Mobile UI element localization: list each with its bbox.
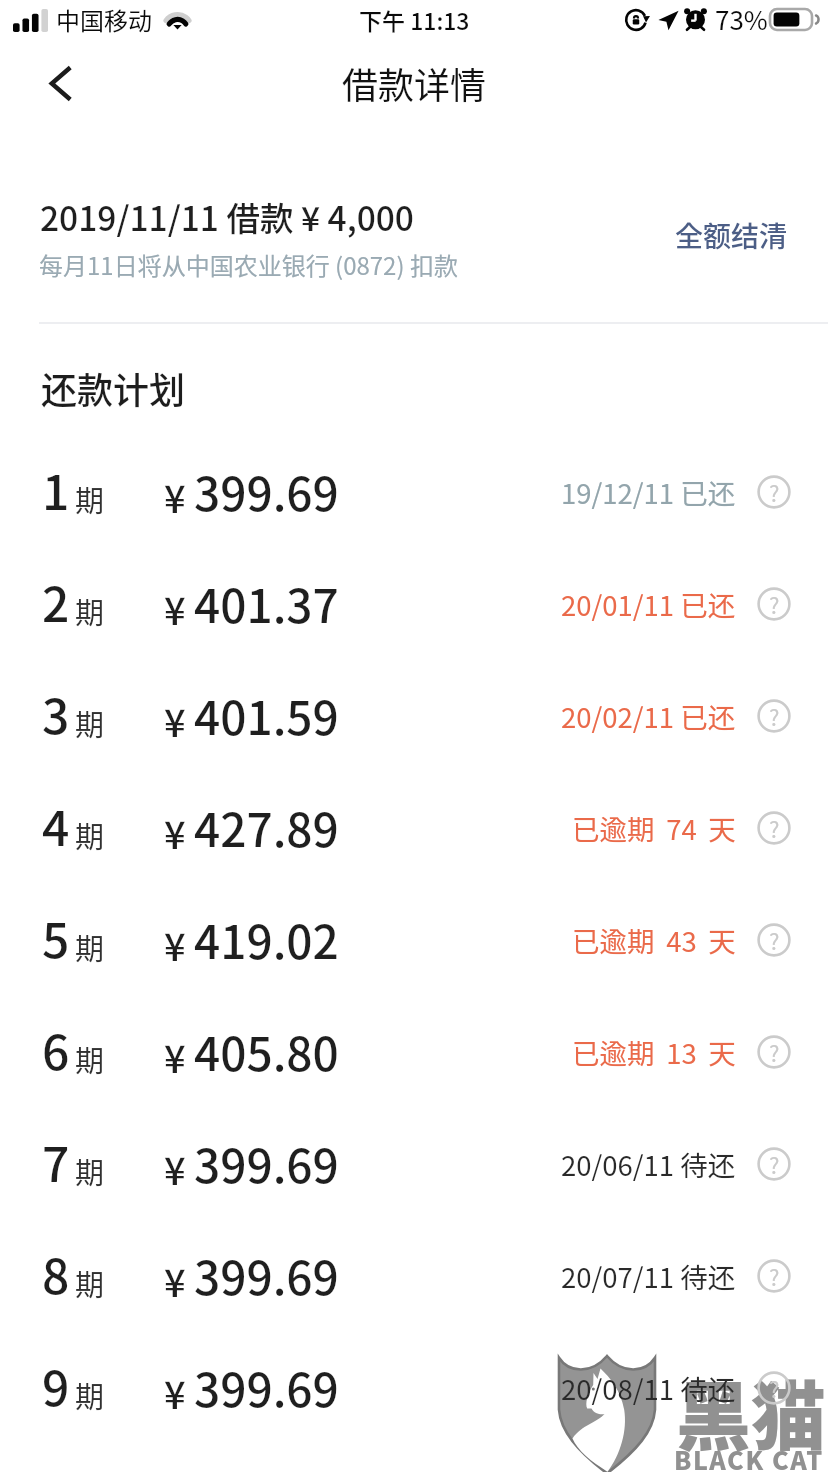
staticText: 下午 11:13 [359,3,470,36]
button[interactable]: Help [757,475,791,509]
button[interactable]: 9 [0,1330,828,1442]
staticText: ? [769,476,780,508]
staticText: ¥ [164,1029,186,1084]
staticText: 全额结清 [675,215,788,256]
button[interactable]: Help [757,587,791,621]
staticText: 期 [75,1262,105,1304]
button[interactable]: 3 [0,658,828,770]
staticText: 5 [42,902,70,972]
staticText: 2 [42,566,70,636]
button[interactable]: Help [757,923,791,957]
button[interactable]: Help [757,1371,791,1405]
staticText: ? [769,700,780,732]
staticText: ? [769,812,780,844]
staticText: 20/08/11 待还 [561,1368,736,1408]
staticText: 2019/11/11 借款 ¥ 4,000 [40,192,414,241]
staticText: 还款计划 [41,362,186,414]
staticText: 3 [42,678,70,748]
staticText: 4 [42,790,70,860]
staticText: 399.69 [194,1242,339,1309]
staticText: BLACK CAT [674,1441,824,1472]
staticText: 黑猫 [676,1357,827,1466]
staticText: ¥ [164,581,186,636]
staticText: 7 [42,1126,70,1196]
staticText: ¥ [164,693,186,748]
staticText: 1 [42,454,70,524]
staticText: 20/07/11 待还 [561,1256,736,1296]
button[interactable]: 6 [0,994,828,1106]
staticText: ¥ [164,1141,186,1196]
button[interactable]: Help [757,1147,791,1181]
staticText: 401.59 [194,682,339,749]
staticText: 已逾期 43 天 [572,920,736,960]
staticText: ? [769,1372,780,1404]
staticText: 每月11日将从中国农业银行 (0872) 扣款 [39,247,458,282]
staticText: 20/06/11 待还 [561,1144,736,1184]
staticText: 19/12/11 已还 [561,472,736,512]
staticText: 419.02 [194,906,339,973]
staticText: ¥ [164,917,186,972]
button[interactable]: Help [757,1035,791,1069]
button[interactable]: Help [757,1259,791,1293]
staticText: 借款详情 [342,57,487,109]
staticText: ? [769,588,780,620]
staticText: 期 [75,1038,105,1080]
staticText: 期 [75,1150,105,1192]
staticText: 期 [75,590,105,632]
staticText: ¥ [164,1365,186,1420]
staticText: 399.69 [194,458,339,525]
button[interactable]: 8 [0,1218,828,1330]
staticText: ¥ [164,469,186,524]
staticText: ? [769,1148,780,1180]
staticText: 期 [75,1374,105,1416]
staticText: 20/01/11 已还 [561,584,736,624]
staticText: 405.80 [194,1018,339,1085]
staticText: 期 [75,702,105,744]
staticText: 401.37 [194,570,339,637]
button[interactable]: 2 [0,546,828,658]
staticText: 已逾期 13 天 [572,1032,736,1072]
staticText: 期 [75,478,105,520]
staticText: ? [769,924,780,956]
button[interactable]: 1 [0,434,828,546]
staticText: 20/02/11 已还 [561,696,736,736]
button[interactable]: 5 [0,882,828,994]
staticText: 6 [42,1014,70,1084]
button[interactable]: 4 [0,770,828,882]
staticText: ¥ [164,1253,186,1308]
staticText: 427.89 [194,794,339,861]
button[interactable]: 全额结清 [675,215,788,256]
staticText: ¥ [164,805,186,860]
staticText: 399.69 [194,1354,339,1421]
staticText: 中国移动 [56,2,152,37]
staticText: ? [769,1260,780,1292]
button[interactable]: Help [757,699,791,733]
staticText: 399.69 [194,1130,339,1197]
button[interactable]: 7 [0,1106,828,1218]
staticText: ? [769,1036,780,1068]
staticText: 73% [715,0,768,38]
staticText: 已逾期 74 天 [572,808,736,848]
staticText: 9 [42,1350,70,1420]
staticText: 8 [42,1238,70,1308]
button[interactable]: Help [757,811,791,845]
staticText: 期 [75,814,105,856]
staticText: 期 [75,926,105,968]
button[interactable]: Back [30,52,92,114]
